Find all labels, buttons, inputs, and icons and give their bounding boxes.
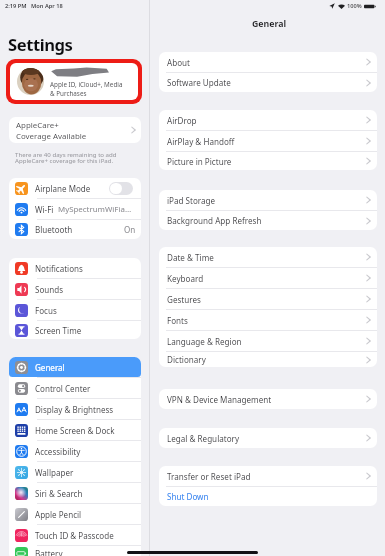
button[interactable]: General	[9, 357, 141, 377]
button[interactable]: VPN & Device Management	[159, 389, 377, 409]
staticText: Accessibility	[35, 446, 81, 457]
button[interactable]: iPad Storage	[159, 190, 377, 210]
button[interactable]: Background App Refresh	[159, 211, 377, 230]
button[interactable]: Language & Region	[159, 331, 377, 351]
button[interactable]: Control Center	[9, 378, 141, 398]
staticText: Picture in Picture	[167, 156, 366, 167]
button[interactable]: Screen Time	[9, 321, 141, 339]
button[interactable]: Picture in Picture	[159, 152, 377, 170]
staticText: Apple ID, iCloud+, Media & Purchases	[50, 80, 123, 97]
staticText: Home Screen & Dock	[35, 425, 115, 436]
button[interactable]: Transfer or Reset iPad	[159, 466, 377, 486]
button[interactable]: Fonts	[159, 310, 377, 330]
staticText: Display & Brightness	[35, 404, 114, 415]
staticText: Battery	[35, 548, 63, 556]
staticText: Shut Down	[167, 491, 209, 502]
staticText: There are 40 days remaining to add Apple…	[15, 150, 117, 165]
staticText: Dictionary	[167, 354, 366, 365]
button[interactable]: Shut Down	[159, 487, 377, 506]
button[interactable]: Battery	[9, 546, 141, 556]
button[interactable]: Siri & Search	[9, 483, 141, 503]
staticText: Airplane Mode	[35, 183, 91, 194]
button[interactable]: Airplane Mode	[9, 178, 141, 198]
button[interactable]: Airplane Mode toggle	[109, 182, 133, 195]
button[interactable]: Bluetooth	[9, 220, 141, 239]
button[interactable]: Sounds	[9, 279, 141, 299]
staticText: Bluetooth	[35, 224, 73, 235]
staticText: Touch ID & Passcode	[35, 530, 114, 541]
staticText: Notifications	[35, 263, 83, 274]
staticText: Sounds	[35, 284, 64, 295]
staticText: Siri & Search	[35, 488, 83, 499]
button[interactable]: Apple Pencil	[9, 504, 141, 524]
staticText: Apple Pencil	[35, 509, 82, 520]
staticText: Background App Refresh	[167, 215, 366, 226]
button[interactable]: Date & Time	[159, 247, 377, 267]
button[interactable]: Software Update	[159, 73, 377, 92]
button[interactable]: About	[159, 52, 377, 72]
staticText: Keyboard	[167, 273, 366, 284]
button[interactable]: AppleCare+ Coverage Available	[9, 117, 141, 143]
button[interactable]: Notifications	[9, 258, 141, 278]
button[interactable]: Home Screen & Dock	[9, 420, 141, 440]
staticText: On	[124, 224, 136, 235]
staticText: 2:19 PM	[5, 2, 27, 10]
staticText: Legal & Regulatory	[167, 433, 366, 444]
staticText: Fonts	[167, 315, 366, 326]
button[interactable]: AirPlay & Handoff	[159, 131, 377, 151]
staticText: Gestures	[167, 294, 366, 305]
staticText: Wi-Fi	[35, 204, 54, 215]
button[interactable]: Dictionary	[159, 352, 377, 367]
staticText: About	[167, 57, 366, 68]
staticText: Mon Apr 18	[31, 2, 63, 10]
staticText: Control Center	[35, 383, 91, 394]
button[interactable]: Legal & Regulatory	[159, 428, 377, 448]
button[interactable]: Display & Brightness	[9, 399, 141, 419]
staticText: iPad Storage	[167, 195, 366, 206]
staticText: General	[35, 362, 65, 373]
button[interactable]: Accessibility	[9, 441, 141, 461]
button[interactable]: Apple ID, iCloud+, Media & Purchases	[10, 63, 138, 100]
button[interactable]: Wi-Fi	[9, 199, 141, 219]
staticText: Language & Region	[167, 336, 366, 347]
staticText: Settings	[8, 33, 73, 56]
staticText: Screen Time	[35, 325, 82, 336]
button[interactable]: Keyboard	[159, 268, 377, 288]
staticText: AirDrop	[167, 115, 366, 126]
staticText: Wallpaper	[35, 467, 74, 478]
button[interactable]: Focus	[9, 300, 141, 320]
staticText: AirPlay & Handoff	[167, 136, 366, 147]
staticText: AppleCare+ Coverage Available	[16, 120, 131, 141]
staticText: Transfer or Reset iPad	[167, 471, 366, 482]
staticText: General	[252, 18, 287, 30]
staticText: Date & Time	[167, 252, 366, 263]
staticText: Software Update	[167, 77, 366, 88]
staticText: VPN & Device Management	[167, 394, 366, 405]
button[interactable]: Gestures	[159, 289, 377, 309]
staticText: MySpectrumWiFia…	[58, 204, 132, 215]
button[interactable]: Wallpaper	[9, 462, 141, 482]
staticText: 100%	[347, 2, 362, 10]
button[interactable]: AirDrop	[159, 110, 377, 130]
button[interactable]: Touch ID & Passcode	[9, 525, 141, 545]
staticText: Focus	[35, 305, 57, 316]
